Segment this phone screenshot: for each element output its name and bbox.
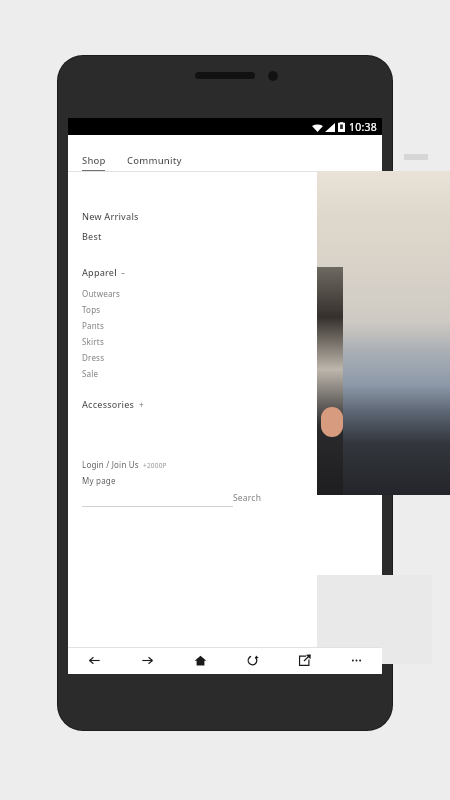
button[interactable]: More options — [330, 647, 382, 674]
button[interactable]: Pants — [82, 317, 331, 333]
button[interactable]: Accessories — [82, 397, 331, 411]
staticText: 10:38 — [349, 120, 377, 134]
staticText: Dress — [82, 352, 105, 363]
staticText: Sale — [82, 368, 99, 379]
button[interactable]: Shop — [82, 154, 106, 167]
staticText: Skirts — [82, 336, 104, 347]
staticText: Tops — [82, 304, 101, 315]
button[interactable]: Home — [174, 647, 226, 674]
button[interactable]: Dress — [82, 349, 331, 365]
button[interactable]: Apparel — [82, 265, 331, 279]
staticText: Accessories — [82, 398, 135, 410]
staticText: Community — [127, 154, 182, 167]
button[interactable]: Forward — [121, 647, 174, 674]
button[interactable]: New Arrivals — [82, 209, 331, 223]
staticText: – — [121, 267, 126, 278]
button[interactable]: Search — [233, 492, 262, 504]
staticText: Search — [233, 492, 262, 504]
staticText: +2000P — [143, 461, 167, 470]
button[interactable]: Outwears — [82, 285, 331, 301]
staticText: Best — [82, 230, 102, 242]
button[interactable]: Open in new tab — [278, 647, 330, 674]
button[interactable]: Skirts — [82, 333, 331, 349]
staticText: My page — [82, 475, 116, 486]
button[interactable]: Community — [127, 154, 182, 167]
staticText: + — [139, 399, 144, 410]
button[interactable]: Tops — [82, 301, 331, 317]
staticText: Shop — [82, 154, 106, 167]
staticText: Outwears — [82, 288, 121, 299]
button[interactable]: Reload — [226, 647, 278, 674]
button[interactable]: My page — [82, 475, 116, 486]
staticText: New Arrivals — [82, 210, 139, 222]
staticText: Pants — [82, 320, 104, 331]
button[interactable]: Best — [82, 229, 331, 243]
button[interactable]: Back — [68, 647, 121, 674]
staticText: Login / Join Us — [82, 459, 139, 470]
button[interactable]: Login / Join Us — [82, 459, 167, 470]
button[interactable]: Sale — [82, 365, 331, 381]
staticText: Apparel — [82, 266, 117, 278]
